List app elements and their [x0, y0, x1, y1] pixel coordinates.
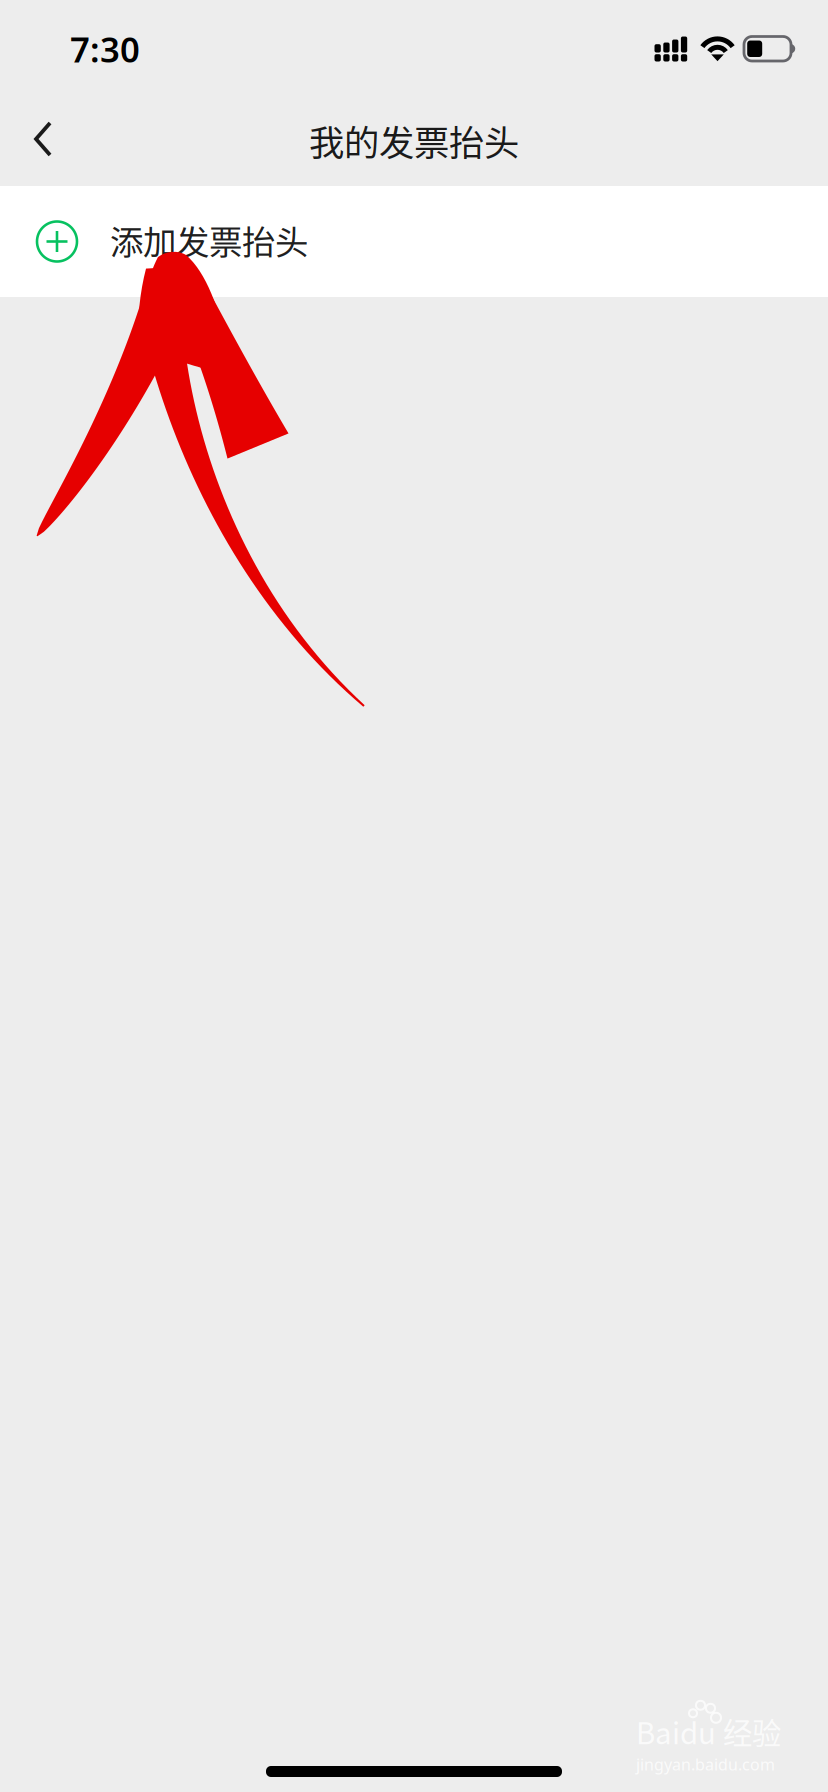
- button[interactable]: 添加发票抬头: [0, 186, 828, 297]
- staticText: 我的发票抬头: [309, 115, 519, 166]
- staticText: 添加发票抬头: [110, 216, 308, 264]
- staticText: jingyan.baidu.com: [636, 1754, 775, 1775]
- button[interactable]: Back: [2, 98, 84, 186]
- staticText: Baidu 经验: [636, 1710, 781, 1753]
- staticText: 7:30: [70, 26, 140, 72]
